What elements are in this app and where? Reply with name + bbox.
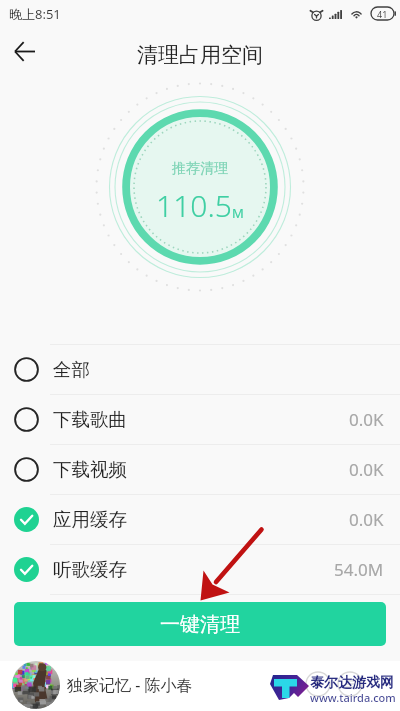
staticText: 0.0K: [349, 458, 384, 481]
staticText: 54.0M: [334, 558, 384, 581]
button[interactable]: 应用缓存: [0, 495, 400, 544]
button[interactable]: 返回: [0, 27, 48, 75]
staticText: 下载视频: [53, 458, 127, 481]
staticText: 0.0K: [349, 408, 384, 431]
staticText: 下载歌曲: [53, 408, 127, 431]
staticText: 110.5: [156, 185, 232, 226]
staticText: 泰尔达游戏网: [310, 674, 394, 692]
staticText: www.tairda.com: [310, 690, 396, 705]
staticText: 推荐清理: [172, 160, 228, 178]
staticText: 41: [377, 8, 388, 20]
button[interactable]: 播放: [305, 671, 331, 697]
staticText: 独家记忆 - 陈小春: [67, 674, 193, 696]
staticText: 应用缓存: [53, 508, 127, 531]
button[interactable]: 播放列表: [337, 671, 363, 697]
staticText: 听歌缓存: [53, 558, 127, 581]
staticText: 全部: [53, 358, 90, 381]
staticText: 一键清理: [160, 612, 240, 637]
button[interactable]: 专辑封面: [12, 661, 60, 709]
button[interactable]: 全部: [0, 345, 400, 394]
staticText: 晚上8:51: [9, 5, 61, 23]
button[interactable]: 下载视频: [0, 445, 400, 494]
button[interactable]: 一键清理: [14, 602, 386, 646]
staticText: M: [232, 204, 244, 222]
staticText: 清理占用空间: [137, 42, 263, 68]
button[interactable]: 下载歌曲: [0, 395, 400, 444]
staticText: 0.0K: [349, 508, 384, 531]
button[interactable]: 听歌缓存: [0, 545, 400, 594]
